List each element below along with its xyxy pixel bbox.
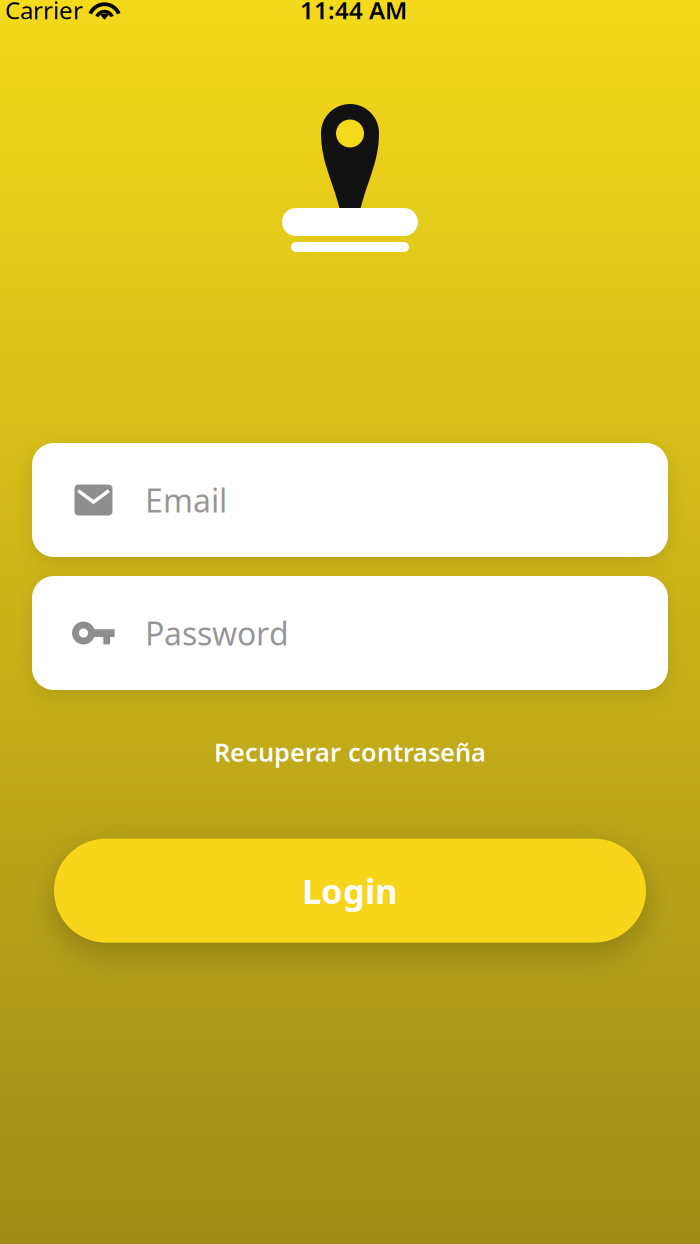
staticText: Carrier	[5, 0, 83, 26]
staticText: Email	[145, 479, 227, 521]
button[interactable]: Email	[32, 443, 668, 557]
button[interactable]: Recuperar contraseña	[198, 727, 502, 777]
button[interactable]: Password	[32, 576, 668, 690]
staticText: Password	[145, 612, 289, 654]
button[interactable]: Login	[54, 839, 646, 943]
staticText: Login	[302, 868, 398, 914]
staticText: 11:44 AM	[300, 0, 407, 26]
staticText: Recuperar contraseña	[214, 735, 486, 769]
